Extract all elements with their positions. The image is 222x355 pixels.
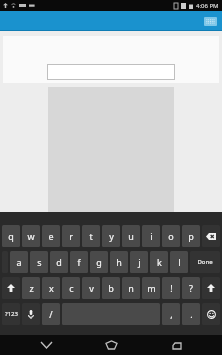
staticText: s (37, 256, 42, 268)
button[interactable]: f (70, 251, 88, 273)
button[interactable]: Done (190, 251, 220, 273)
button[interactable]: ?123 (2, 303, 20, 325)
staticText: , (170, 308, 173, 320)
button[interactable]: z (22, 277, 40, 299)
button[interactable]: x (42, 277, 60, 299)
button[interactable]: Switch keyboard (204, 17, 217, 26)
button[interactable]: k (150, 251, 168, 273)
button[interactable]: Back (26, 335, 66, 355)
staticText: r (69, 230, 73, 242)
staticText: y (109, 230, 114, 242)
button[interactable]: l (170, 251, 188, 273)
button[interactable]: d (50, 251, 68, 273)
staticText: u (128, 230, 134, 242)
staticText: w (27, 230, 35, 242)
button[interactable]: b (102, 277, 120, 299)
staticText: / (49, 308, 53, 320)
staticText: . (190, 308, 193, 320)
staticText: ? (189, 282, 193, 294)
staticText: q (8, 230, 14, 242)
staticText: c (69, 282, 74, 294)
staticText: a (16, 256, 22, 268)
staticText: l (178, 256, 181, 268)
button[interactable]: j (130, 251, 148, 273)
staticText: k (157, 256, 162, 268)
staticText: ! (170, 282, 173, 294)
button[interactable]: shift (2, 277, 20, 299)
staticText: ?123 (5, 310, 18, 318)
button[interactable]: p (182, 225, 200, 247)
button[interactable]: Recent apps (157, 335, 197, 355)
staticText: h (116, 256, 122, 268)
staticText: v (89, 282, 94, 294)
staticText: t (89, 230, 93, 242)
button[interactable]: ? (182, 277, 200, 299)
button[interactable]: e (42, 225, 60, 247)
button[interactable]: / (42, 303, 60, 325)
staticText: b (108, 282, 114, 294)
button[interactable]: r (62, 225, 80, 247)
staticText: n (128, 282, 134, 294)
staticText: e (48, 230, 54, 242)
staticText: x (49, 282, 54, 294)
button[interactable]: s (30, 251, 48, 273)
staticText: f (77, 256, 81, 268)
staticText: Done (197, 258, 213, 266)
staticText: m (147, 282, 156, 294)
button[interactable]: , (162, 303, 180, 325)
button[interactable]: ! (162, 277, 180, 299)
button[interactable]: w (22, 225, 40, 247)
button[interactable]: shift (202, 277, 220, 299)
button[interactable] (47, 64, 175, 80)
button[interactable]: c (62, 277, 80, 299)
staticText: p (188, 230, 194, 242)
button[interactable]: backspace (202, 225, 220, 247)
button[interactable]: u (122, 225, 140, 247)
button[interactable]: q (2, 225, 20, 247)
staticText: z (29, 282, 34, 294)
button[interactable]: mic (22, 303, 40, 325)
button[interactable]: g (90, 251, 108, 273)
staticText: j (138, 256, 141, 268)
staticText: 4:06 PM (196, 2, 219, 10)
button[interactable]: n (122, 277, 140, 299)
button[interactable]: Home (91, 335, 131, 355)
button[interactable]: o (162, 225, 180, 247)
staticText: i (150, 230, 153, 242)
button[interactable]: i (142, 225, 160, 247)
button[interactable]: v (82, 277, 100, 299)
staticText: d (56, 256, 62, 268)
button[interactable]: a (10, 251, 28, 273)
button[interactable]: y (102, 225, 120, 247)
button[interactable]: . (182, 303, 200, 325)
staticText: g (96, 256, 102, 268)
button[interactable]: h (110, 251, 128, 273)
button[interactable]: m (142, 277, 160, 299)
staticText: o (168, 230, 174, 242)
button[interactable]: t (82, 225, 100, 247)
button[interactable]: emoji (202, 303, 220, 325)
